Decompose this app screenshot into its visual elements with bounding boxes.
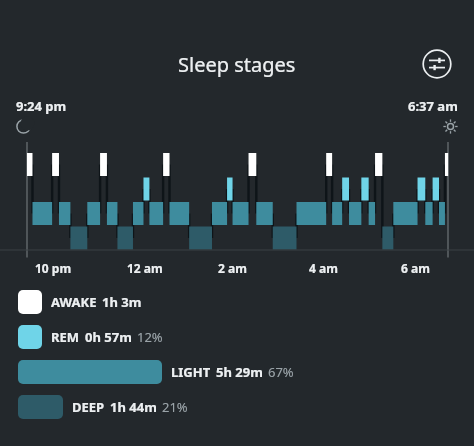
staticText: 2 am <box>218 260 247 276</box>
staticText: 5h 29m <box>216 363 263 381</box>
staticText: 1h 3m <box>102 293 142 311</box>
button[interactable]: AWAKE <box>18 290 464 314</box>
staticText: LIGHT <box>171 363 211 381</box>
staticText: 0h 57m <box>85 328 132 346</box>
staticText: 4 am <box>309 260 338 276</box>
staticText: 21% <box>162 398 188 416</box>
button[interactable]: REM <box>18 325 464 349</box>
staticText: 1h 44m <box>110 398 157 416</box>
staticText: 67% <box>268 363 294 381</box>
staticText: 12% <box>137 328 163 346</box>
staticText: 6:37 am <box>408 97 458 115</box>
staticText: REM <box>51 328 80 346</box>
staticText: 9:24 pm <box>16 97 67 115</box>
staticText: AWAKE <box>51 293 97 311</box>
staticText: DEEP <box>72 398 105 416</box>
staticText: Sleep stages <box>178 51 296 78</box>
button[interactable]: LIGHT <box>18 360 464 384</box>
staticText: 12 am <box>127 260 163 276</box>
staticText: 10 pm <box>35 260 72 276</box>
staticText: 6 am <box>401 260 430 276</box>
button[interactable]: DEEP <box>18 395 464 419</box>
button[interactable]: Settings <box>422 49 452 79</box>
